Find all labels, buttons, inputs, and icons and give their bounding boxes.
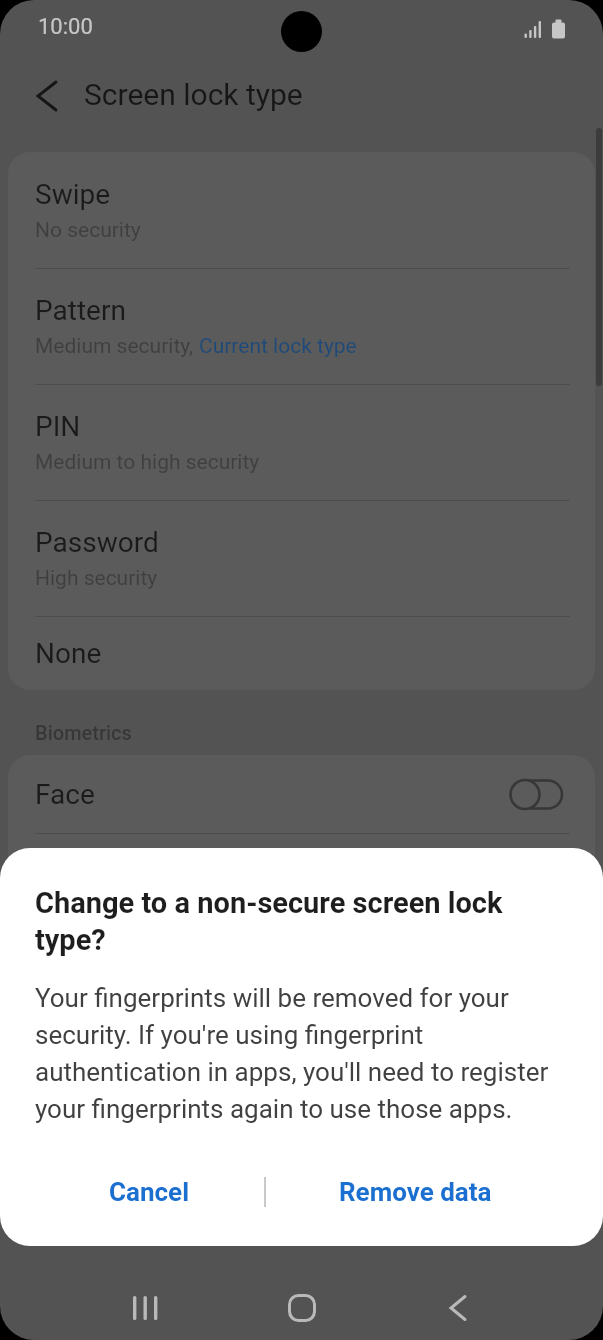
button[interactable]: Cancel bbox=[35, 1169, 264, 1215]
button[interactable]: Remove data bbox=[266, 1169, 565, 1215]
staticText: Screen lock type bbox=[84, 77, 303, 112]
staticText: Swipe bbox=[35, 178, 111, 211]
staticText: 10:00 bbox=[38, 14, 93, 40]
staticText: Password bbox=[35, 526, 159, 559]
staticText: Remove data bbox=[339, 1177, 492, 1207]
button[interactable]: PIN bbox=[8, 385, 595, 500]
button[interactable] bbox=[413, 1284, 503, 1332]
staticText: None bbox=[35, 637, 102, 670]
button[interactable] bbox=[257, 1284, 347, 1332]
staticText: Current lock type bbox=[199, 334, 357, 359]
button[interactable] bbox=[24, 74, 68, 118]
button[interactable]: Face bbox=[8, 755, 595, 833]
staticText: High security bbox=[35, 566, 158, 591]
staticText: Biometrics bbox=[35, 721, 132, 744]
button[interactable]: Pattern bbox=[8, 269, 595, 384]
staticText: Medium to high security bbox=[35, 450, 260, 475]
button[interactable] bbox=[101, 1284, 191, 1332]
staticText: No security bbox=[35, 218, 141, 243]
staticText: Change to a non-secure screen lock type? bbox=[35, 886, 503, 957]
staticText: Medium security, bbox=[35, 334, 199, 359]
staticText: PIN bbox=[35, 410, 81, 443]
button[interactable]: Password bbox=[8, 501, 595, 616]
staticText: Cancel bbox=[109, 1177, 190, 1207]
button[interactable]: None bbox=[8, 617, 595, 690]
staticText: Pattern bbox=[35, 294, 126, 327]
button[interactable]: Swipe bbox=[8, 152, 595, 268]
staticText: Your fingerprints will be removed for yo… bbox=[35, 983, 549, 1125]
staticText: Face bbox=[35, 778, 95, 811]
